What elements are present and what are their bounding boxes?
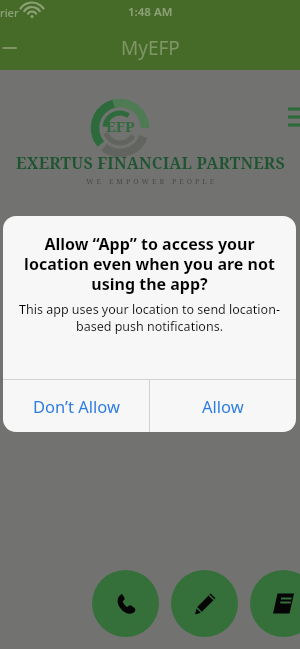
- button[interactable]: Don’t Allow: [3, 380, 149, 432]
- staticText: rier: [0, 5, 19, 20]
- staticText: Allow “App” to access your location even…: [19, 233, 280, 294]
- staticText: MyEFP: [121, 35, 180, 61]
- staticText: Allow: [202, 395, 244, 417]
- button[interactable]: Library: [250, 570, 300, 637]
- staticText: Don’t Allow: [33, 395, 120, 417]
- button[interactable]: Write: [171, 570, 238, 637]
- button[interactable]: Allow: [150, 380, 296, 432]
- button[interactable]: Back: [0, 34, 16, 62]
- staticText: EFP: [106, 116, 135, 136]
- button[interactable]: Call: [92, 570, 159, 637]
- button[interactable]: Menu: [284, 100, 300, 130]
- staticText: This app uses your location to send loca…: [19, 301, 280, 334]
- staticText: 1:48 AM: [128, 4, 173, 20]
- staticText: EXERTUS FINANCIAL PARTNERS: [16, 152, 285, 174]
- staticText: W E E M P O W E R P E O P L E: [86, 177, 215, 187]
